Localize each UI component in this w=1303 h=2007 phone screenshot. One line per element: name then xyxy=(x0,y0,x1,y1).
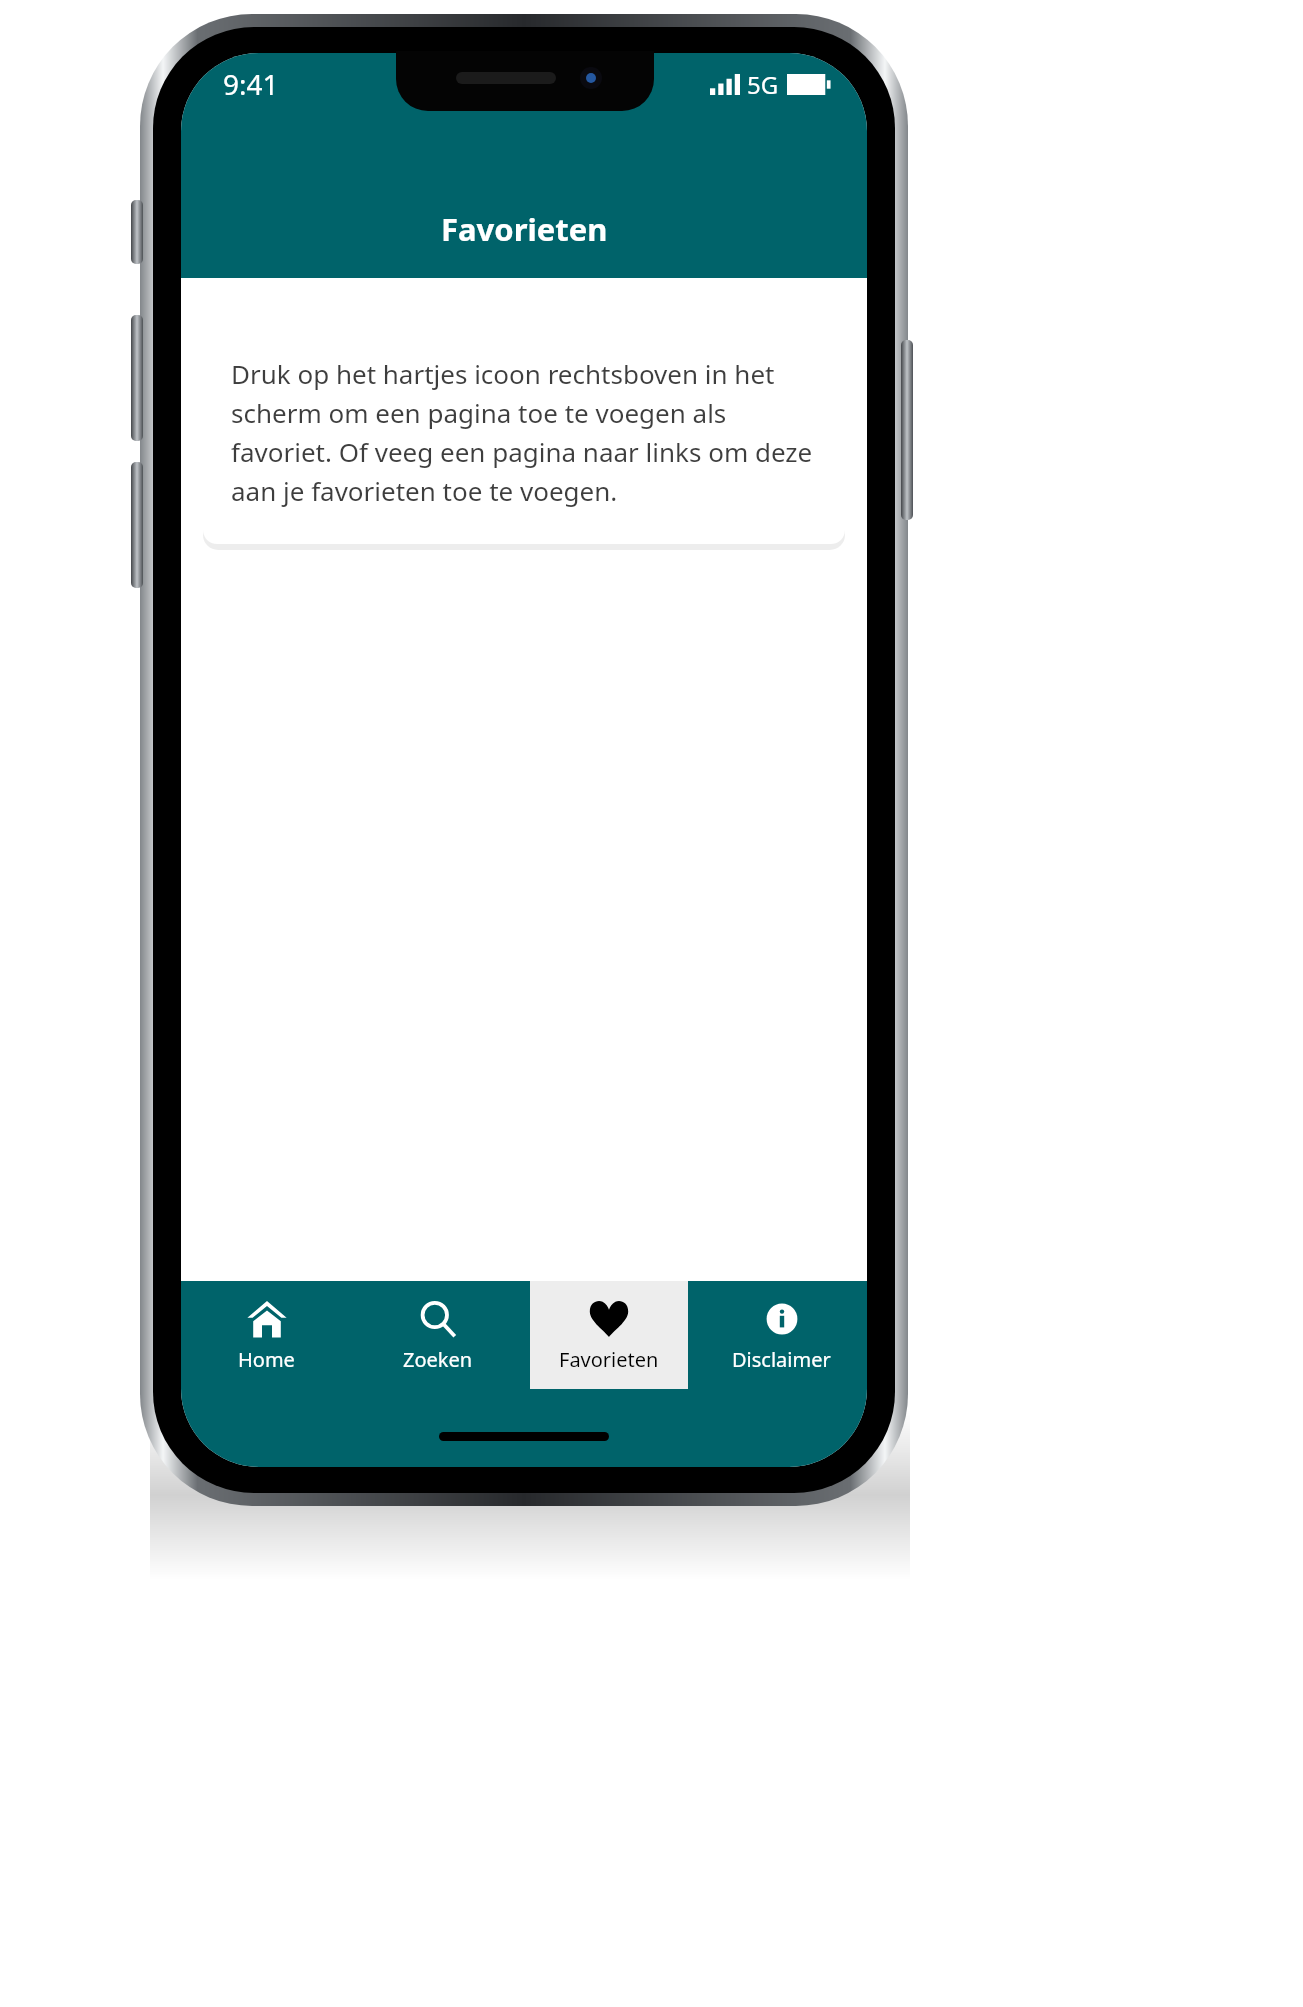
other: Home xyxy=(247,1299,287,1339)
staticText: Druk op het hartjes icoon rechtsboven in… xyxy=(231,356,817,508)
other: Disclaimer xyxy=(762,1299,802,1339)
staticText: 5G xyxy=(747,68,779,101)
button[interactable]: Favorieten xyxy=(530,1281,688,1389)
staticText: Home xyxy=(238,1346,295,1373)
staticText: 9:41 xyxy=(223,65,279,103)
other: Favorieten xyxy=(589,1299,629,1339)
staticText: Zoeken xyxy=(403,1346,473,1373)
staticText: Favorieten xyxy=(559,1346,659,1373)
button[interactable]: Home xyxy=(188,1281,345,1389)
staticText: Favorieten xyxy=(441,208,608,250)
button[interactable]: Disclaimer xyxy=(702,1281,860,1389)
button[interactable]: Druk op het hartjes icoon rechtsboven in… xyxy=(203,320,845,544)
other: Zoeken xyxy=(418,1299,458,1339)
button[interactable]: Zoeken xyxy=(359,1281,516,1389)
staticText: Disclaimer xyxy=(732,1346,831,1373)
